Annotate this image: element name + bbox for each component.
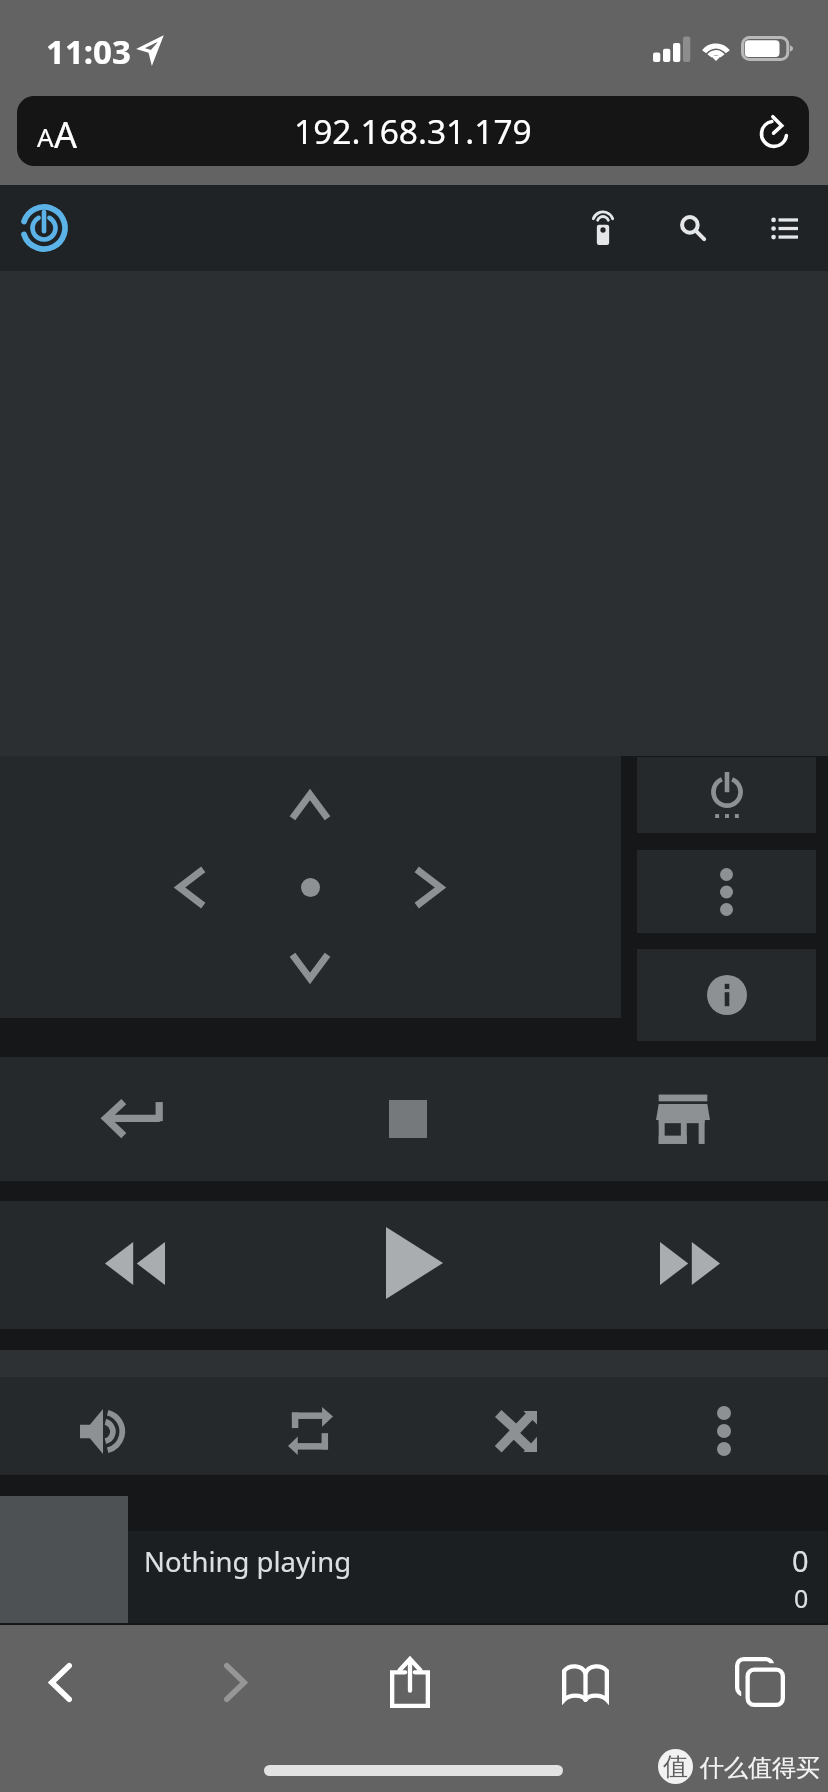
button[interactable]: Rewind [75, 1213, 195, 1313]
button[interactable]: Remote [560, 193, 646, 263]
button[interactable]: Home [623, 1069, 743, 1169]
button[interactable]: Select [270, 847, 350, 927]
staticText: A [54, 110, 78, 159]
button[interactable]: Right [390, 847, 470, 927]
staticText: 0 [792, 1541, 809, 1580]
button[interactable]: Share [355, 1637, 465, 1727]
button[interactable]: Left [150, 847, 230, 927]
button[interactable]: Text size [17, 96, 809, 166]
button[interactable]: Info [637, 949, 816, 1041]
button[interactable]: Up [270, 765, 350, 845]
button[interactable]: Play [354, 1213, 474, 1313]
staticText: 11:03 [46, 29, 131, 74]
staticText: 值 [663, 1751, 688, 1782]
button[interactable]: Home [9, 198, 79, 258]
button[interactable]: Down [270, 928, 350, 1008]
staticText: 什么值得买 [700, 1753, 820, 1783]
button[interactable]: Reload [742, 100, 806, 164]
button[interactable]: Forward [180, 1637, 290, 1727]
button[interactable]: Volume [43, 1381, 163, 1481]
button[interactable]: Back [5, 1637, 115, 1727]
button[interactable]: Back [74, 1069, 194, 1169]
button[interactable]: Text size [29, 100, 97, 164]
staticText: A [37, 119, 54, 154]
button[interactable]: Stop [348, 1069, 468, 1169]
staticText: 0 [794, 1581, 809, 1615]
button[interactable]: Tabs [705, 1637, 815, 1727]
button[interactable]: Search [650, 193, 736, 263]
button[interactable]: Repeat [250, 1381, 370, 1481]
button[interactable] [128, 1531, 828, 1623]
button[interactable]: Options [637, 850, 816, 933]
staticText: Nothing playing [144, 1543, 352, 1580]
button[interactable]: More [664, 1381, 784, 1481]
button[interactable]: Menu [742, 193, 828, 263]
button[interactable]: Shuffle [457, 1381, 577, 1481]
button[interactable]: Power [637, 757, 816, 833]
staticText: 192.168.31.179 [294, 108, 532, 154]
button[interactable]: Fast forward [630, 1213, 750, 1313]
button[interactable]: Bookmarks [530, 1637, 640, 1727]
